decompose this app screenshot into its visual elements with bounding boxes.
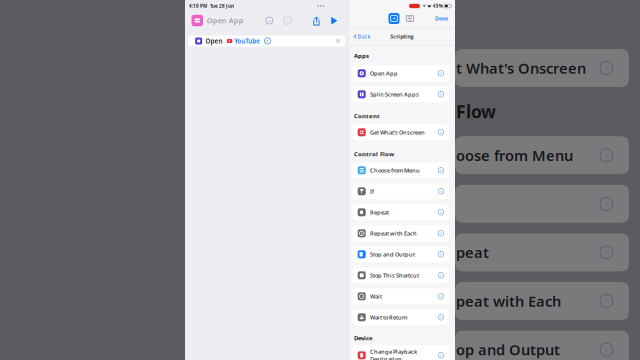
button[interactable]: Wait to Return	[352, 309, 449, 325]
button[interactable]: If	[352, 183, 449, 199]
staticText: Get What's Onscreen	[370, 128, 425, 136]
staticText: Choose from Menu	[370, 166, 420, 174]
staticText: Repeat	[370, 208, 389, 216]
staticText: t What's Onscreen	[456, 58, 586, 78]
staticText: Flow	[456, 100, 496, 123]
button[interactable]: Stop This Shortcut	[352, 267, 449, 283]
staticText: Back	[358, 33, 371, 40]
button[interactable]: Open App	[352, 65, 449, 81]
staticText: Open App	[370, 69, 398, 77]
staticText: Split-Screen Apps	[370, 90, 419, 98]
staticText: Wait	[370, 292, 382, 300]
staticText: Tue 28 Jun	[210, 3, 234, 9]
staticText: Done	[435, 15, 448, 22]
staticText: Wait to Return	[370, 313, 408, 321]
staticText: peat with Each	[456, 291, 561, 311]
staticText: Control Flow	[354, 150, 394, 158]
button[interactable]: Comment	[262, 14, 276, 27]
button[interactable]: Back	[354, 30, 371, 43]
staticText: Apps	[354, 51, 369, 60]
staticText: Stop and Output	[370, 250, 415, 258]
staticText: op and Output	[456, 340, 560, 359]
staticText: Change Playback Destination	[370, 348, 417, 360]
staticText: YouTube	[234, 37, 260, 45]
button[interactable]: Done	[433, 13, 450, 24]
button[interactable]: Share	[295, 14, 323, 27]
button[interactable]: Stop and Output	[352, 246, 449, 262]
button[interactable]: Get What's Onscreen	[352, 124, 449, 140]
staticText: Repeat with Each	[370, 229, 417, 237]
staticText: oose from Menu	[456, 145, 573, 165]
button[interactable]: Split-Screen Apps	[352, 86, 449, 102]
staticText: 45%	[433, 3, 443, 9]
staticText: Open	[205, 37, 222, 45]
staticText: Stop This Shortcut	[370, 271, 419, 279]
button[interactable]: History	[276, 14, 295, 27]
staticText: Open App	[207, 16, 244, 25]
staticText: 4:10 PM	[189, 3, 207, 9]
button[interactable]: Change Playback Destination	[352, 345, 449, 360]
button[interactable]: Repeat with Each	[352, 225, 449, 241]
button[interactable]: Wait	[352, 288, 449, 304]
button[interactable]: Repeat	[352, 204, 449, 220]
button[interactable]: Variables	[399, 13, 414, 24]
button[interactable]: Actions	[388, 13, 399, 24]
button[interactable]: Open	[188, 35, 345, 46]
button[interactable]: Choose from Menu	[352, 162, 449, 178]
staticText: peat	[456, 243, 489, 262]
staticText: Scripting	[390, 33, 413, 40]
staticText: Device	[354, 334, 373, 342]
button[interactable]: Run	[323, 14, 341, 27]
staticText: If	[370, 187, 374, 195]
staticText: Content	[354, 112, 380, 120]
